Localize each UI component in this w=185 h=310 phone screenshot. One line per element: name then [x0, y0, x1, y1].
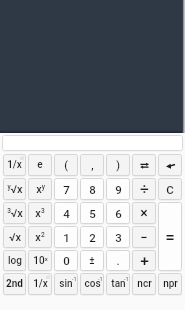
button[interactable]: Swap — [132, 154, 156, 176]
staticText: n! — [20, 156, 24, 161]
staticText: 8 — [89, 183, 96, 196]
button[interactable]: x3 — [28, 202, 52, 224]
staticText: C — [166, 183, 174, 196]
button[interactable]: log — [3, 250, 26, 271]
button[interactable]: 4 — [54, 202, 78, 224]
staticText: ncr — [137, 278, 152, 290]
button[interactable]: 1 — [54, 226, 78, 248]
staticText: + — [140, 252, 149, 270]
staticText: 9 — [115, 183, 122, 196]
staticText: npr — [163, 278, 178, 290]
button[interactable]: ± — [80, 250, 104, 271]
staticText: -1 — [98, 276, 103, 282]
button[interactable]: 10x — [28, 250, 52, 271]
button[interactable]: 2nd — [3, 273, 26, 295]
staticText: 4 — [63, 207, 70, 220]
button[interactable]: cos — [80, 273, 104, 295]
button[interactable]: 2 — [80, 226, 104, 248]
staticText: = — [165, 227, 175, 247]
staticText: x2 — [35, 231, 45, 244]
button[interactable]: 8 — [80, 178, 104, 200]
staticText: 6 — [115, 207, 122, 220]
staticText: √x — [9, 231, 21, 244]
button[interactable]: 5 — [80, 202, 104, 224]
button[interactable]: C — [158, 178, 182, 200]
button[interactable]: e — [28, 154, 52, 176]
button[interactable]: + — [132, 250, 156, 271]
button[interactable]: tan — [106, 273, 130, 295]
staticText: 3 — [115, 231, 122, 244]
staticText: tan — [111, 278, 126, 290]
button[interactable]: 3√x — [3, 202, 26, 224]
staticText: 5 — [89, 207, 96, 220]
button[interactable]: sin — [54, 273, 78, 295]
staticText: ) — [116, 159, 120, 171]
staticText: 10x — [33, 255, 48, 267]
button[interactable]: Backspace — [158, 154, 182, 176]
button[interactable]: 7 — [54, 178, 78, 200]
staticText: − — [140, 230, 148, 245]
staticText: y√x — [7, 183, 23, 196]
button[interactable]: ) — [106, 154, 130, 176]
button[interactable]: 6 — [106, 202, 130, 224]
button[interactable]: ÷ — [132, 178, 156, 200]
staticText: 1 — [63, 231, 70, 244]
staticText: 7 — [63, 183, 70, 196]
button[interactable]: × — [132, 202, 156, 224]
button[interactable]: = — [158, 202, 182, 271]
staticText: n! — [46, 275, 50, 280]
staticText: ( — [64, 159, 68, 171]
button[interactable]: xy — [28, 178, 52, 200]
button[interactable]: , — [80, 154, 104, 176]
button[interactable]: . — [106, 250, 130, 271]
staticText: sin — [59, 278, 73, 290]
staticText: , — [91, 159, 94, 171]
staticText: -1 — [72, 276, 77, 282]
staticText: 1/x — [7, 159, 22, 171]
staticText: ± — [89, 255, 95, 267]
staticText: × — [140, 205, 148, 221]
staticText: 1/x — [33, 278, 48, 290]
button[interactable]: − — [132, 226, 156, 248]
button[interactable]: 1/x — [28, 273, 52, 295]
staticText: ÷ — [140, 180, 149, 198]
button[interactable]: 0 — [54, 250, 78, 271]
staticText: e — [37, 159, 43, 171]
staticText: xy — [36, 183, 45, 196]
staticText: -1 — [124, 276, 129, 282]
staticText: x3 — [35, 207, 45, 220]
staticText: . — [116, 254, 120, 267]
button[interactable]: y√x — [3, 178, 26, 200]
staticText: 0 — [63, 254, 70, 267]
button[interactable] — [2, 135, 183, 151]
button[interactable]: ncr — [132, 273, 156, 295]
staticText: 3√x — [7, 207, 23, 220]
button[interactable]: 9 — [106, 178, 130, 200]
button[interactable]: x2 — [28, 226, 52, 248]
staticText: log — [8, 255, 22, 267]
staticText: cos — [84, 278, 101, 290]
button[interactable]: npr — [158, 273, 182, 295]
button[interactable]: 3 — [106, 226, 130, 248]
staticText: 2nd — [6, 278, 23, 290]
staticText: 2 — [89, 231, 96, 244]
button[interactable]: 1/x — [3, 154, 26, 176]
button[interactable]: ( — [54, 154, 78, 176]
button[interactable]: √x — [3, 226, 26, 248]
